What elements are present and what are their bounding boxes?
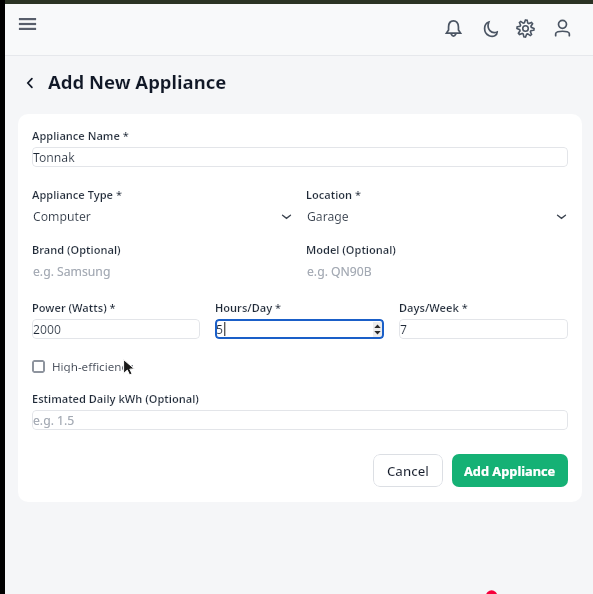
- staticText: e.g. 1.5: [33, 412, 75, 429]
- button[interactable]: Settings: [510, 13, 540, 43]
- button[interactable]: Profile: [547, 13, 577, 43]
- staticText: Model (Optional): [306, 242, 396, 257]
- staticText: Power (Watts) *: [32, 300, 116, 315]
- staticText: 7: [400, 321, 407, 338]
- button[interactable]: e.g. 1.5: [32, 410, 568, 430]
- staticText: e.g. QN90B: [307, 263, 372, 280]
- staticText: 2000: [33, 321, 61, 338]
- staticText: e.g. Samsung: [33, 263, 111, 280]
- staticText: Garage: [307, 208, 349, 225]
- button[interactable]: Back: [20, 73, 40, 93]
- button[interactable]: Dark mode: [476, 13, 506, 43]
- staticText: 5: [216, 321, 223, 338]
- staticText: Location *: [306, 187, 361, 202]
- staticText: Brand (Optional): [32, 242, 121, 257]
- button[interactable]: Tonnak: [32, 147, 568, 167]
- staticText: Estimated Daily kWh (Optional): [32, 391, 199, 406]
- button[interactable]: Add Appliance: [452, 454, 568, 487]
- staticText: Add New Appliance: [48, 69, 227, 94]
- staticText: Hours/Day *: [215, 300, 282, 315]
- button[interactable]: e.g. Samsung: [32, 261, 293, 281]
- staticText: Days/Week *: [399, 300, 468, 315]
- staticText: High-efficiency: [52, 359, 133, 373]
- staticText: Cancel: [387, 462, 429, 480]
- button[interactable]: Computer: [32, 206, 293, 226]
- staticText: Computer: [33, 208, 91, 225]
- button[interactable]: Notifications: [438, 13, 468, 43]
- button[interactable]: Garage: [306, 206, 568, 226]
- button[interactable]: 5: [215, 319, 384, 339]
- button[interactable]: 2000: [32, 319, 200, 339]
- button[interactable]: Cancel: [373, 454, 443, 487]
- button[interactable]: 7: [399, 319, 568, 339]
- button[interactable]: e.g. QN90B: [306, 261, 568, 281]
- staticText: Appliance Type *: [32, 187, 122, 202]
- button[interactable]: High-efficiency: [32, 359, 133, 373]
- staticText: Add Appliance: [464, 462, 556, 479]
- staticText: Tonnak: [33, 149, 75, 166]
- staticText: Appliance Name *: [32, 128, 129, 143]
- button[interactable]: Menu: [13, 10, 41, 38]
